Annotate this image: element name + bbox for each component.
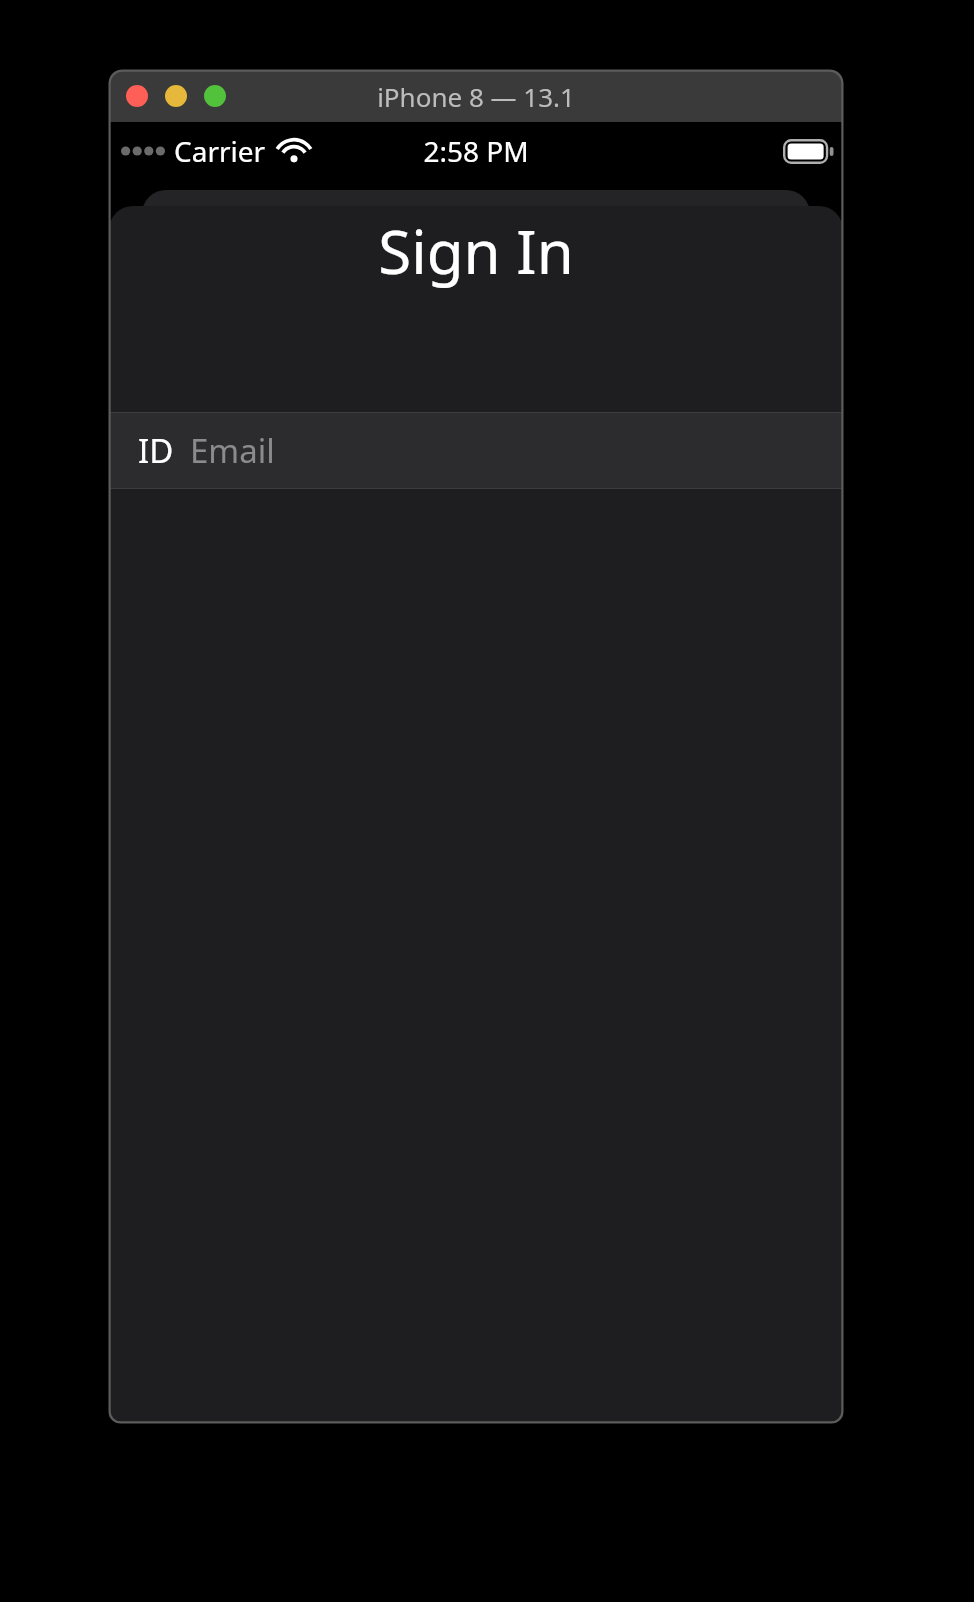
button[interactable]: Close window	[126, 85, 148, 107]
staticText: Sign In	[378, 210, 574, 292]
staticText: iPhone 8 — 13.1	[377, 79, 575, 114]
button[interactable]: Minimize window	[165, 85, 187, 107]
staticText: Carrier	[174, 132, 266, 170]
other: Wi-Fi signal	[277, 138, 311, 164]
staticText: Email	[190, 428, 275, 473]
other: Battery full	[783, 139, 835, 164]
button[interactable]: Zoom window	[204, 85, 226, 107]
button[interactable]: ID	[109, 413, 843, 488]
staticText: 2:58 PM	[423, 132, 529, 170]
staticText: ID	[138, 428, 174, 473]
